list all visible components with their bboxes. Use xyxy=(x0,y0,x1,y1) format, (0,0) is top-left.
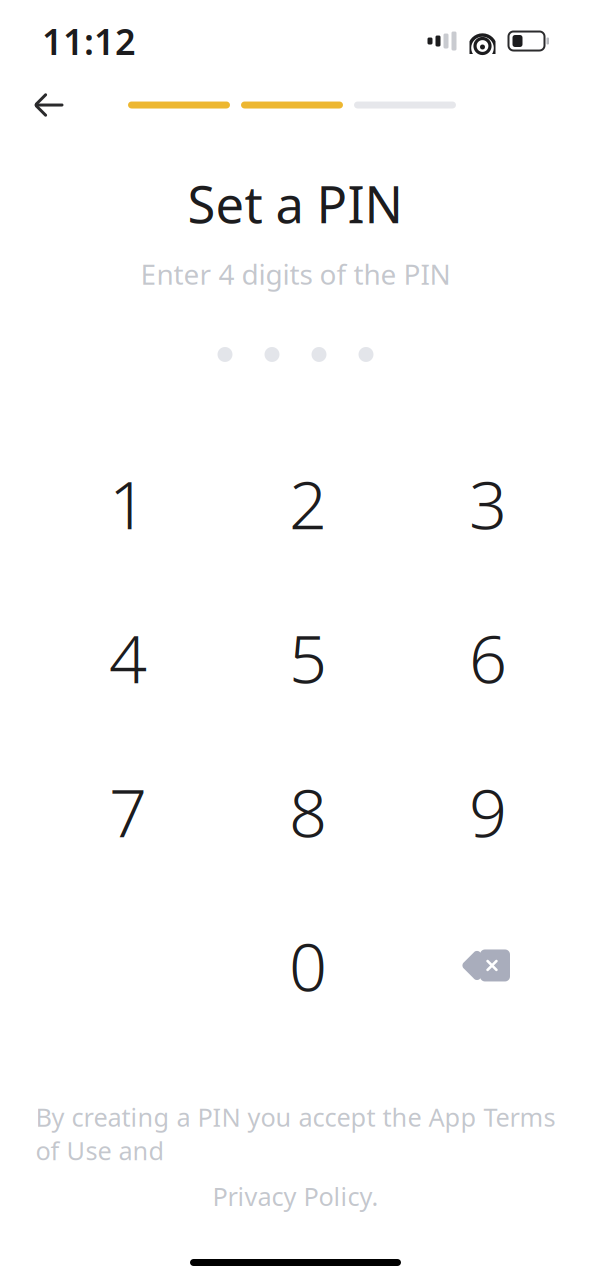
staticText: 9 xyxy=(469,767,507,856)
button[interactable]: Back xyxy=(22,82,76,128)
button[interactable]: 2 xyxy=(218,426,398,580)
button[interactable]: 3 xyxy=(398,426,578,580)
staticText: 7 xyxy=(109,767,147,856)
staticText: 11:12 xyxy=(42,17,136,65)
button[interactable]: 8 xyxy=(218,734,398,888)
staticText: 6 xyxy=(469,613,507,702)
staticText: 0 xyxy=(289,921,327,1010)
button[interactable]: 1 xyxy=(38,426,218,580)
staticText: Enter 4 digits of the PIN xyxy=(140,255,450,292)
button[interactable]: 9 xyxy=(398,734,578,888)
button[interactable]: 5 xyxy=(218,580,398,734)
button[interactable]: 0 xyxy=(218,888,398,1042)
button[interactable]: 7 xyxy=(38,734,218,888)
staticText: Set a PIN xyxy=(187,170,403,237)
staticText: 3 xyxy=(469,459,507,548)
staticText: By creating a PIN you accept the App Ter… xyxy=(35,1100,555,1167)
button[interactable]: 4 xyxy=(38,580,218,734)
staticText: 4 xyxy=(109,613,147,702)
staticText: 5 xyxy=(289,613,327,702)
staticText: 2 xyxy=(289,459,327,548)
staticText: 1 xyxy=(109,459,147,548)
button[interactable]: Delete xyxy=(398,888,578,1042)
staticText: 8 xyxy=(289,767,327,856)
button[interactable]: 6 xyxy=(398,580,578,734)
staticText: Privacy Policy. xyxy=(212,1179,378,1213)
